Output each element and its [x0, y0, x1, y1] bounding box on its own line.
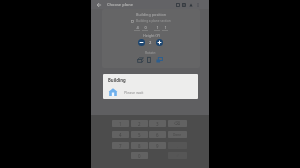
staticText: 2 — [138, 121, 141, 127]
button[interactable]: 0 — [142, 25, 148, 31]
button[interactable]: Action 2 — [189, 3, 193, 7]
staticText: 4 — [119, 132, 122, 138]
button[interactable]: Rotate option 1 — [147, 57, 151, 63]
button[interactable]: Building — [103, 74, 198, 99]
button[interactable]: Key Done — [168, 131, 187, 138]
button[interactable]: Decrease height — [138, 39, 145, 46]
staticText: Building position — [136, 12, 167, 17]
staticText: 2 — [149, 40, 152, 46]
button[interactable]: Key ⌫ — [168, 120, 187, 127]
button[interactable]: Rotate option 2 — [156, 57, 163, 63]
button[interactable]: 1 — [162, 25, 168, 31]
button[interactable]: Building a plane section — [131, 19, 171, 23]
staticText: Building — [108, 77, 126, 83]
button[interactable]: Navigate back — [96, 2, 102, 8]
staticText: 5 — [138, 132, 141, 138]
staticText: 8 — [138, 143, 141, 149]
staticText: Rotate: — [145, 50, 157, 54]
staticText: Height (Y) — [143, 33, 160, 38]
button[interactable]: Rotate option 0 — [137, 57, 144, 63]
button[interactable]: Action 1 — [182, 3, 186, 7]
staticText: 4 — [136, 25, 139, 30]
staticText: Building a plane section — [136, 19, 171, 23]
staticText: 9 — [156, 143, 159, 149]
staticText: 1 — [156, 25, 159, 30]
staticText: 3 — [156, 121, 159, 127]
staticText: 0 — [144, 25, 147, 30]
button[interactable]: Increase height — [156, 39, 163, 46]
staticText: 0 — [138, 153, 141, 159]
staticText: Please wait — [124, 90, 144, 95]
button[interactable]: Action 0 — [176, 3, 180, 7]
staticText: ⌫ — [174, 121, 181, 126]
button[interactable]: Key 8 — [131, 142, 148, 149]
button[interactable]: 1 — [154, 25, 160, 31]
staticText: 7 — [119, 143, 122, 149]
button[interactable]: 4 — [134, 25, 140, 31]
staticText: 1 — [119, 121, 122, 127]
button[interactable]: Key 4 — [112, 131, 129, 138]
staticText: Done — [173, 133, 182, 137]
staticText: 6 — [156, 132, 159, 138]
staticText: 1 — [164, 25, 167, 30]
staticText: Choose plane — [107, 2, 133, 7]
button[interactable]: Action 3 — [196, 3, 200, 7]
